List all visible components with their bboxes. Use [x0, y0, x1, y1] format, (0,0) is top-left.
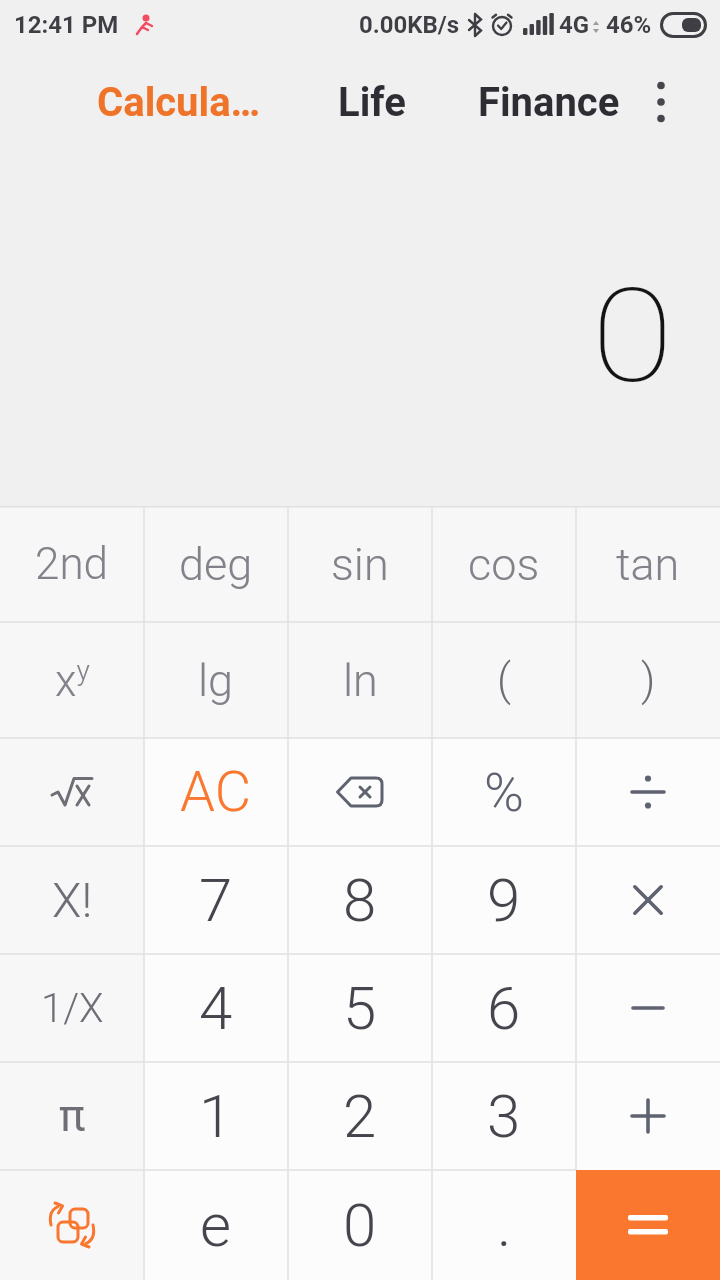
staticText: (: [497, 654, 512, 706]
staticText: %: [484, 761, 524, 824]
button[interactable]: ln: [288, 622, 432, 738]
button[interactable]: 6: [432, 954, 576, 1062]
staticText: 2nd: [35, 538, 109, 590]
button[interactable]: .: [432, 1170, 576, 1280]
button[interactable]: sin: [288, 506, 432, 622]
button[interactable]: cos: [432, 506, 576, 622]
button[interactable]: Life: [338, 79, 406, 126]
button[interactable]: tan: [576, 506, 720, 622]
staticText: .: [497, 1190, 512, 1260]
button[interactable]: xy: [0, 622, 144, 738]
staticText: 2: [343, 1081, 377, 1151]
staticText: 0.00KB/s: [359, 11, 460, 39]
staticText: 4G: [559, 11, 590, 39]
button[interactable]: [288, 738, 432, 846]
staticText: AC: [180, 759, 252, 825]
button[interactable]: (: [432, 622, 576, 738]
button[interactable]: %: [432, 738, 576, 846]
button[interactable]: X!: [0, 846, 144, 954]
staticText: 1/X: [41, 985, 104, 1032]
staticText: 0: [343, 1190, 377, 1260]
button[interactable]: [576, 1170, 720, 1280]
button[interactable]: Calcula…: [97, 79, 261, 126]
staticText: xy: [55, 654, 90, 706]
button[interactable]: 3: [432, 1062, 576, 1170]
staticText: 4: [199, 973, 233, 1043]
button[interactable]: [576, 954, 720, 1062]
staticText: Finance: [478, 79, 620, 126]
button[interactable]: Finance: [478, 79, 620, 126]
staticText: e: [200, 1190, 232, 1260]
staticText: deg: [179, 538, 253, 591]
button[interactable]: lg: [144, 622, 288, 738]
button[interactable]: ): [576, 622, 720, 738]
staticText: 46%: [606, 11, 652, 39]
staticText: X!: [52, 872, 93, 928]
button[interactable]: e: [144, 1170, 288, 1280]
button[interactable]: [0, 1170, 144, 1280]
button[interactable]: [0, 738, 144, 846]
staticText: Life: [338, 79, 406, 126]
staticText: 1: [199, 1081, 233, 1151]
staticText: sin: [331, 538, 389, 591]
staticText: 6: [487, 973, 521, 1043]
staticText: 5: [343, 973, 377, 1043]
button[interactable]: deg: [144, 506, 288, 622]
staticText: 8: [343, 865, 377, 935]
staticText: 3: [487, 1081, 521, 1151]
staticText: ): [641, 654, 656, 706]
staticText: 7: [199, 865, 233, 935]
staticText: 0: [591, 261, 674, 413]
button[interactable]: AC: [144, 738, 288, 846]
staticText: 9: [487, 865, 521, 935]
button[interactable]: 0: [288, 1170, 432, 1280]
button[interactable]: 8: [288, 846, 432, 954]
button[interactable]: [645, 78, 677, 126]
staticText: Calcula…: [97, 79, 261, 126]
button[interactable]: [576, 1062, 720, 1170]
staticText: lg: [198, 654, 234, 707]
staticText: π: [59, 1090, 86, 1142]
button[interactable]: 4: [144, 954, 288, 1062]
staticText: tan: [616, 538, 680, 591]
button[interactable]: π: [0, 1062, 144, 1170]
staticText: 12:41 PM: [14, 11, 119, 39]
button[interactable]: 7: [144, 846, 288, 954]
button[interactable]: 9: [432, 846, 576, 954]
button[interactable]: 1: [144, 1062, 288, 1170]
button[interactable]: 2: [288, 1062, 432, 1170]
button[interactable]: [576, 738, 720, 846]
staticText: ln: [343, 654, 378, 707]
button[interactable]: 1/X: [0, 954, 144, 1062]
staticText: cos: [468, 538, 540, 591]
button[interactable]: 2nd: [0, 506, 144, 622]
button[interactable]: [576, 846, 720, 954]
button[interactable]: 5: [288, 954, 432, 1062]
